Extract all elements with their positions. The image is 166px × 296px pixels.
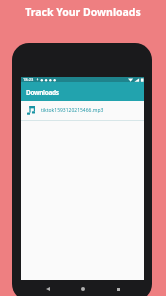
staticText: Track Your Downloads [0,5,166,19]
staticText: tiktok1593120215466.mp3 [41,107,104,114]
button[interactable]: tiktok1593120215466.mp3 [21,101,144,120]
button[interactable]: Recents [112,283,124,295]
button[interactable]: Back [42,283,54,295]
staticText: 18:23 [23,77,34,82]
button[interactable]: Home [77,283,89,295]
staticText: Downloads [26,88,59,97]
